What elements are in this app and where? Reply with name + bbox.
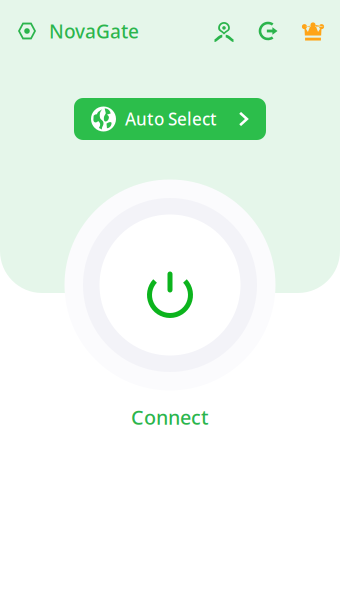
button[interactable]: NovaGate <box>18 8 138 54</box>
button[interactable]: Server location <box>209 16 239 46</box>
staticText: Auto Select <box>125 107 217 131</box>
button[interactable]: Auto Select <box>74 98 266 140</box>
button[interactable]: Connect <box>99 214 240 355</box>
button[interactable]: Log out <box>253 16 283 46</box>
button[interactable]: Premium <box>298 16 328 46</box>
staticText: Connect <box>131 404 209 430</box>
staticText: NovaGate <box>49 18 139 44</box>
